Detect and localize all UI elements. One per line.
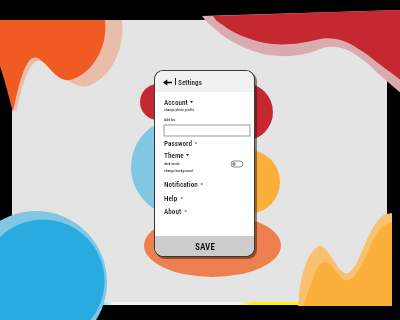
staticText: dark mode (164, 162, 180, 166)
staticText: change photo profile (164, 108, 195, 112)
staticText: Help (164, 194, 178, 202)
staticText: SAVE (195, 241, 215, 252)
staticText: Settings (178, 78, 202, 86)
staticText: Theme (164, 151, 184, 159)
staticText: Add bio (164, 118, 176, 122)
button[interactable] (164, 125, 250, 136)
button[interactable]: Account (164, 98, 193, 106)
button[interactable]: Password (164, 139, 197, 147)
staticText: About (164, 207, 182, 215)
button[interactable]: Notification (164, 180, 203, 188)
staticText: change background (164, 169, 193, 173)
button[interactable]: SAVE (155, 236, 254, 256)
button[interactable]: About (164, 207, 187, 215)
button[interactable]: Dark mode toggle (231, 161, 243, 167)
button[interactable]: Theme (164, 151, 189, 159)
staticText: Password (164, 139, 192, 147)
staticText: Account (164, 98, 188, 106)
button[interactable]: Help (164, 194, 183, 202)
staticText: Notification (164, 180, 198, 188)
button[interactable]: Back (161, 76, 173, 88)
